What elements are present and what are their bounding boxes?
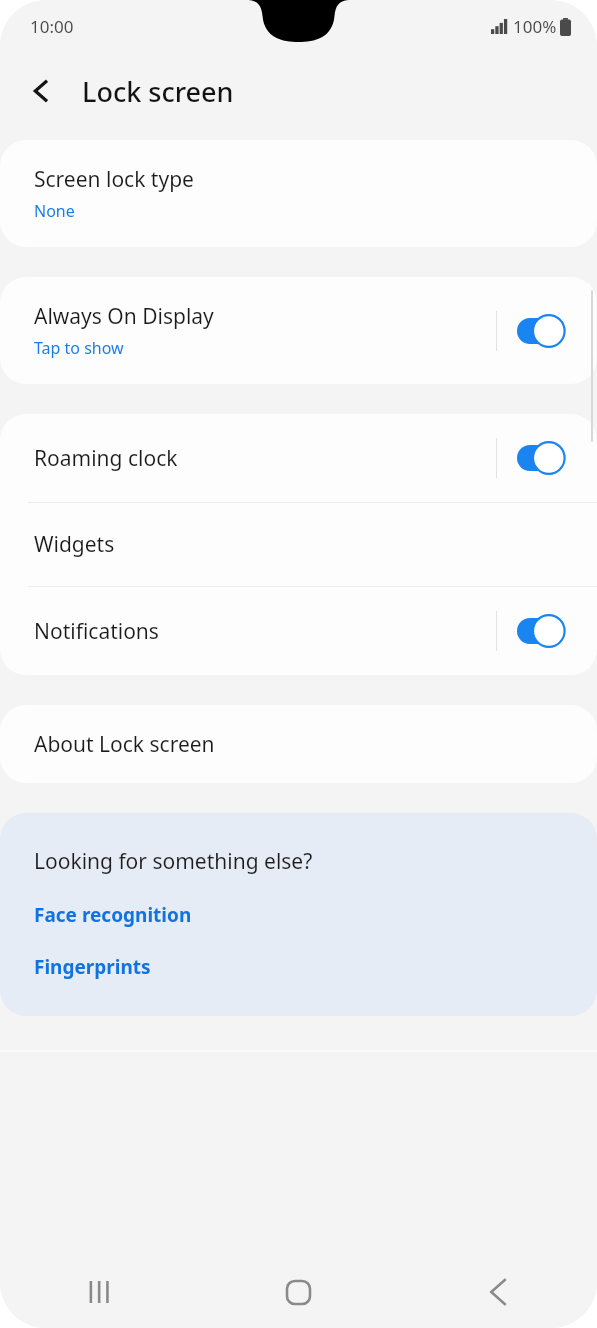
button[interactable]: Fingerprints <box>34 954 151 980</box>
button[interactable]: Face recognition <box>34 902 192 928</box>
button[interactable]: Roaming clock <box>0 414 597 502</box>
staticText: Tap to show <box>34 337 124 359</box>
button[interactable]: About Lock screen <box>0 705 597 783</box>
staticText: None <box>34 200 75 222</box>
staticText: Widgets <box>34 530 115 559</box>
button[interactable]: Notifications <box>0 587 597 675</box>
staticText: 100% <box>513 15 557 38</box>
button[interactable]: Always On Display toggle <box>515 309 571 353</box>
staticText: Roaming clock <box>34 444 178 473</box>
staticText: Always On Display <box>34 302 214 331</box>
button[interactable]: Notifications toggle <box>515 609 571 653</box>
button[interactable]: Back <box>398 1256 597 1328</box>
staticText: Looking for something else? <box>34 847 313 876</box>
button[interactable]: Roaming clock toggle <box>515 436 571 480</box>
button[interactable]: Widgets <box>0 503 597 586</box>
button[interactable]: Home <box>199 1256 398 1328</box>
button[interactable]: Always On Display <box>0 277 597 384</box>
staticText: About Lock screen <box>34 730 215 759</box>
staticText: Lock screen <box>82 73 234 110</box>
staticText: Notifications <box>34 617 159 646</box>
button[interactable]: Screen lock type <box>0 140 597 247</box>
staticText: 10:00 <box>30 15 74 38</box>
staticText: Fingerprints <box>34 954 151 980</box>
button[interactable]: Recent apps <box>0 1256 199 1328</box>
staticText: Face recognition <box>34 902 192 928</box>
staticText: Screen lock type <box>34 165 194 194</box>
button[interactable]: Back <box>18 68 64 114</box>
